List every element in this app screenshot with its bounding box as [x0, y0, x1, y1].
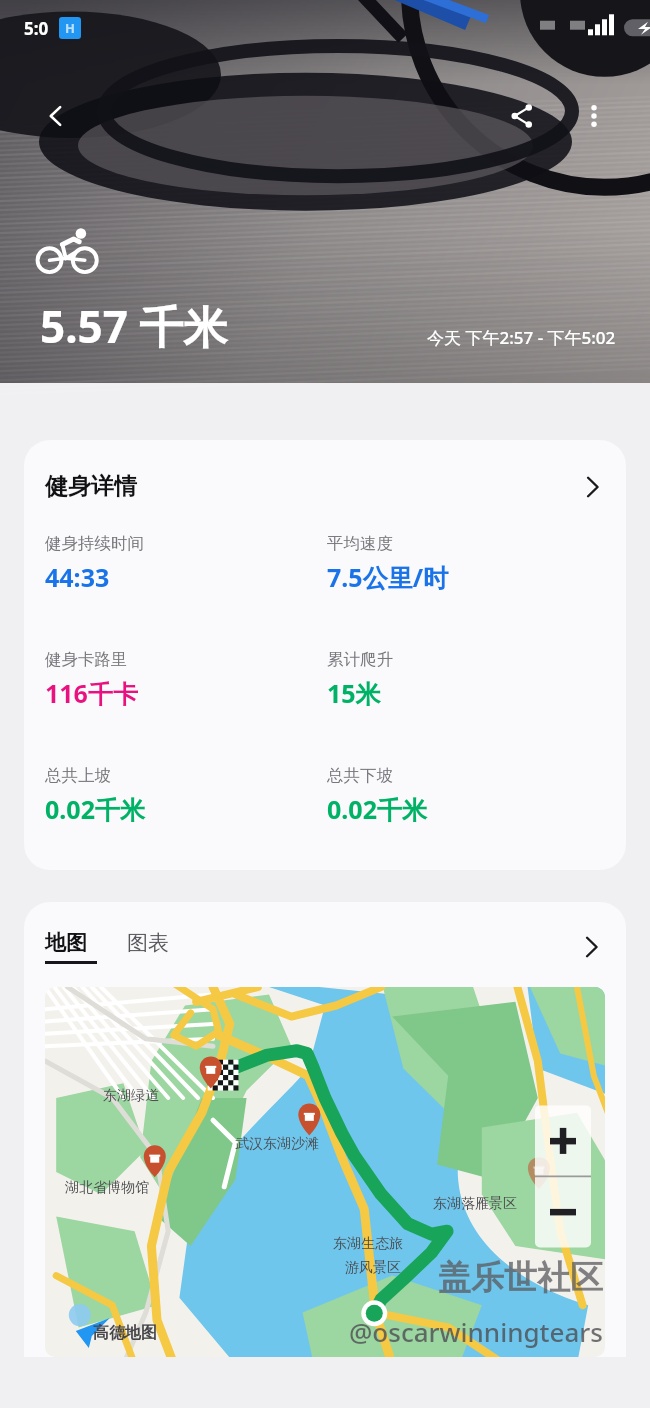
staticText: 今天 下午2:57 - 下午5:02 — [427, 326, 616, 349]
staticText: 116千卡 — [45, 676, 138, 710]
staticText: 武汉东湖沙滩 — [235, 1135, 319, 1153]
button[interactable]: 地图 — [45, 930, 97, 964]
staticText: 0.02千米 — [327, 792, 427, 826]
button[interactable]: Open map — [576, 932, 606, 962]
staticText: 湖北省博物馆 — [65, 1179, 149, 1197]
staticText: 44:33 — [45, 560, 110, 594]
staticText: 15米 — [327, 676, 381, 710]
staticText: 高德地图 — [93, 1323, 157, 1343]
staticText: 健身卡路里 — [45, 649, 128, 670]
button[interactable]: Share — [496, 90, 548, 142]
staticText: 0.02千米 — [45, 792, 145, 826]
staticText: 地图 — [45, 930, 87, 956]
staticText: 总共下坡 — [327, 765, 393, 786]
staticText: 平均速度 — [327, 533, 393, 554]
staticText: 东湖绿道 — [103, 1087, 159, 1105]
staticText: 5.57 千米 — [40, 296, 228, 356]
staticText: 总共上坡 — [45, 765, 111, 786]
button[interactable]: More options — [568, 90, 620, 142]
button[interactable]: Route map — [45, 987, 605, 1357]
staticText: 游风景区 — [345, 1259, 401, 1277]
button[interactable]: Back — [30, 90, 82, 142]
button[interactable]: 图表 — [127, 930, 169, 964]
staticText: 东湖落雁景区 — [433, 1195, 517, 1213]
staticText: @oscarwinningtears — [349, 1314, 603, 1349]
staticText: H — [65, 19, 75, 37]
staticText: 7.5公里/时 — [327, 560, 449, 594]
staticText: 东湖生态旅 — [333, 1235, 403, 1253]
button[interactable]: 健身详情 — [24, 440, 626, 870]
staticText: 累计爬升 — [327, 649, 393, 670]
staticText: 图表 — [127, 930, 169, 956]
staticText: 健身详情 — [45, 472, 137, 501]
staticText: 健身持续时间 — [45, 533, 144, 554]
staticText: 盖乐世社区 — [438, 1257, 603, 1299]
staticText: 5:0 — [24, 17, 49, 40]
